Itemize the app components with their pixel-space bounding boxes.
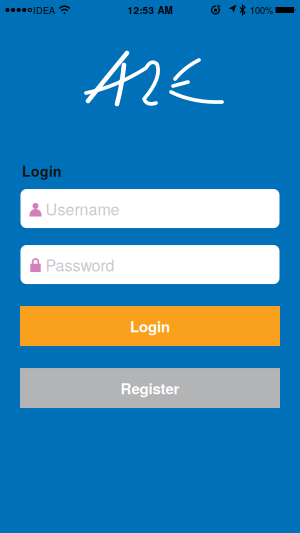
staticText: Login [130, 315, 170, 337]
button[interactable]: Login [20, 306, 280, 346]
staticText: Login [22, 161, 62, 181]
staticText: Register [120, 377, 179, 399]
staticText: IDEA [33, 3, 55, 17]
staticText: 12:53 AM [127, 3, 172, 17]
staticText: Username [45, 197, 119, 220]
button[interactable]: Password [20, 245, 279, 284]
button[interactable]: Username [20, 189, 279, 228]
button[interactable]: Register [20, 368, 280, 408]
staticText: Password [45, 253, 114, 276]
staticText: 100% [250, 3, 273, 17]
